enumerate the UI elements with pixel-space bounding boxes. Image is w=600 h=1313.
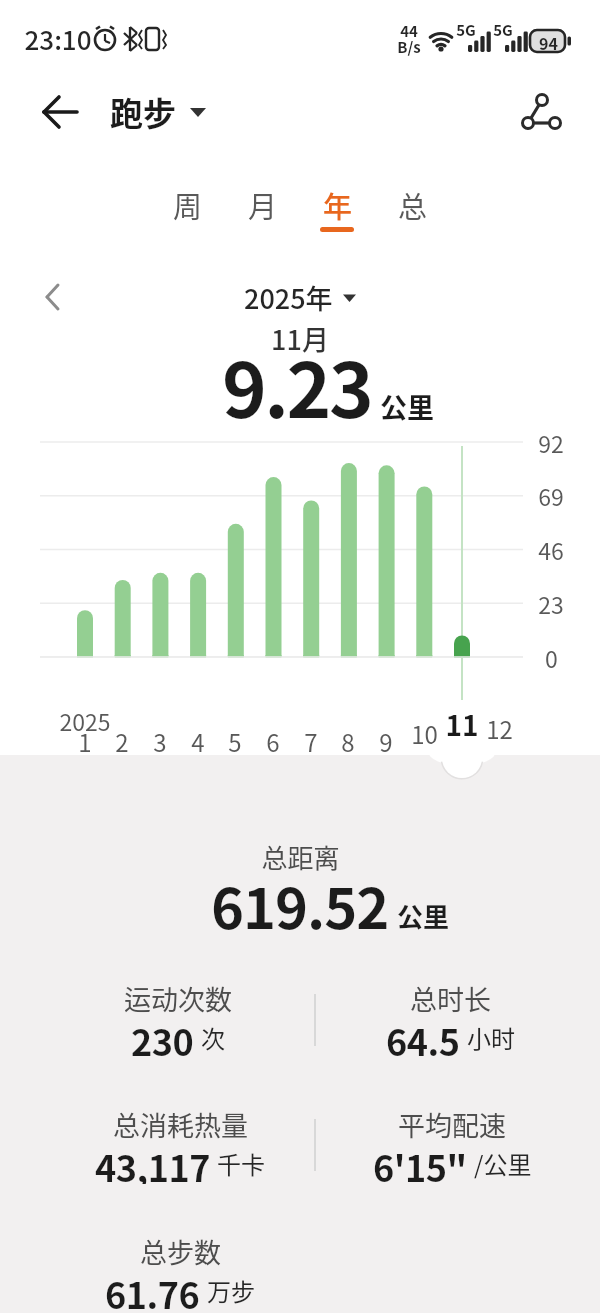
staticText: 46 [538, 533, 564, 566]
staticText: 总消耗热量 [113, 1105, 248, 1144]
staticText: 5G [456, 19, 476, 39]
staticText: 0 [545, 641, 558, 674]
staticText: /公里 [474, 1146, 532, 1181]
button[interactable]: 周 [150, 182, 225, 228]
staticText: B/s [397, 36, 421, 56]
staticText: 11月 [271, 319, 329, 358]
staticText: 94 [539, 31, 558, 51]
staticText: 230 [131, 1014, 194, 1058]
staticText: 4 [191, 724, 205, 758]
staticText: 6 [266, 724, 280, 758]
staticText: 3 [153, 724, 167, 758]
button[interactable] [510, 82, 570, 142]
button[interactable]: 年 [300, 182, 375, 228]
staticText: 总距离 [261, 838, 340, 876]
staticText: 8 [341, 724, 355, 758]
staticText: 9.23 [222, 330, 372, 440]
staticText: 619.52 [211, 864, 389, 945]
staticText: 23 [538, 587, 564, 620]
staticText: 年 [323, 184, 353, 226]
button[interactable] [30, 86, 86, 138]
staticText: 9 [379, 724, 393, 758]
staticText: 万步 [207, 1273, 255, 1308]
staticText: 小时 [467, 1020, 515, 1055]
staticText: 公里 [397, 897, 450, 935]
staticText: 总步数 [140, 1232, 221, 1271]
staticText: 10 [411, 716, 438, 750]
button[interactable]: 月 [225, 182, 300, 228]
staticText: 周 [173, 184, 203, 226]
button[interactable]: 跑步 [110, 86, 206, 138]
staticText: 43,117 [95, 1140, 210, 1184]
staticText: 6'15" [373, 1140, 467, 1184]
staticText: 运动次数 [124, 979, 232, 1018]
staticText: 23:10 [24, 20, 92, 58]
staticText: 64.5 [386, 1014, 460, 1058]
button[interactable] [34, 278, 74, 318]
staticText: 跑步 [110, 88, 176, 136]
staticText: 61.76 [105, 1267, 200, 1311]
staticText: 69 [538, 479, 564, 512]
staticText: 次 [201, 1020, 225, 1055]
staticText: 7 [304, 724, 318, 758]
staticText: 2025年 [244, 278, 333, 317]
staticText: 44 [400, 20, 418, 40]
staticText: 92 [538, 426, 564, 459]
staticText: 2025 [59, 704, 111, 734]
staticText: 总 [398, 184, 428, 226]
staticText: 月 [248, 184, 278, 226]
staticText: 千卡 [217, 1146, 265, 1181]
staticText: 平均配速 [398, 1105, 506, 1144]
staticText: 5 [228, 724, 242, 758]
staticText: 1 [78, 724, 92, 758]
staticText: 5G [493, 19, 513, 39]
staticText: 公里 [380, 387, 434, 426]
button[interactable]: 2025年 [244, 278, 356, 317]
staticText: 12 [486, 711, 513, 745]
staticText: 2 [115, 724, 129, 758]
button[interactable]: 总 [375, 182, 450, 228]
staticText: 11 [445, 704, 479, 738]
staticText: 总时长 [410, 979, 491, 1018]
